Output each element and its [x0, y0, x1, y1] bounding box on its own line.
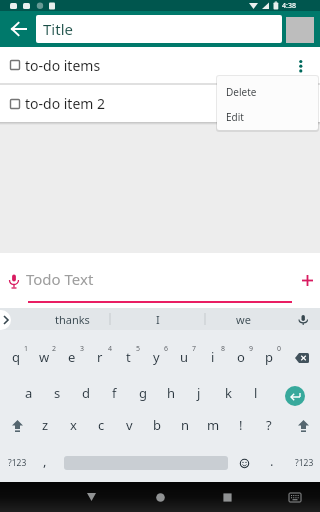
button[interactable]	[292, 53, 312, 79]
staticText: q	[12, 348, 20, 366]
staticText: z	[42, 416, 49, 434]
button[interactable]: l	[242, 383, 270, 403]
button[interactable]: v	[115, 415, 143, 435]
staticText: j	[197, 384, 201, 402]
button[interactable]: p	[255, 347, 283, 367]
staticText: 4:38	[282, 1, 296, 11]
button[interactable]: c	[87, 415, 115, 435]
button[interactable]: n	[171, 415, 199, 435]
staticText: t	[126, 348, 131, 366]
button[interactable]	[295, 418, 311, 434]
button[interactable]: to-do items	[0, 47, 320, 83]
button[interactable]: x	[59, 415, 87, 435]
staticText: s	[54, 384, 61, 402]
button[interactable]: h	[157, 383, 185, 403]
staticText: 6	[164, 344, 169, 354]
button[interactable]: t	[114, 347, 142, 367]
button[interactable]: i	[199, 347, 227, 367]
button[interactable]	[234, 453, 254, 473]
staticText: w	[39, 348, 50, 366]
button[interactable]: w	[30, 347, 58, 367]
staticText: 0	[277, 344, 282, 354]
button[interactable]	[285, 386, 305, 406]
button[interactable]	[5, 271, 23, 291]
staticText: 4	[108, 344, 113, 354]
button[interactable]: .	[258, 451, 286, 471]
button[interactable]	[77, 484, 105, 510]
button[interactable]: y	[142, 347, 170, 367]
button[interactable]: f	[100, 383, 128, 403]
button[interactable]: we	[225, 308, 261, 330]
button[interactable]: r	[86, 347, 114, 367]
button[interactable]: Title	[36, 15, 282, 43]
button[interactable]: e	[58, 347, 86, 367]
button[interactable]: !	[227, 415, 255, 435]
staticText: 2	[52, 344, 57, 354]
button[interactable]: j	[185, 383, 213, 403]
staticText: d	[82, 384, 90, 402]
button[interactable]	[283, 486, 307, 508]
staticText: .	[270, 452, 274, 470]
staticText: r	[97, 348, 103, 366]
staticText: thanks	[55, 312, 90, 327]
staticText: l	[254, 384, 258, 402]
button[interactable]: g	[129, 383, 157, 403]
staticText: b	[153, 416, 161, 434]
staticText: Delete	[226, 85, 257, 99]
staticText: f	[112, 384, 117, 402]
staticText: 8	[221, 344, 226, 354]
button[interactable]: q	[2, 347, 30, 367]
staticText: g	[139, 384, 147, 402]
button[interactable]: ?	[255, 415, 283, 435]
staticText: 1	[24, 344, 29, 354]
button[interactable]: Edit	[217, 104, 318, 130]
staticText: Todo Text	[26, 269, 94, 289]
staticText: Edit	[226, 110, 244, 124]
staticText: Title	[43, 19, 73, 39]
staticText: i	[211, 348, 215, 366]
staticText: ?123	[8, 457, 27, 469]
button[interactable]	[289, 348, 315, 368]
button[interactable]	[5, 15, 33, 43]
staticText: a	[25, 384, 33, 402]
button[interactable]: thanks	[40, 308, 104, 330]
button[interactable]: Delete	[217, 79, 318, 105]
staticText: 9	[249, 344, 254, 354]
staticText: 7	[192, 344, 197, 354]
button[interactable]: o	[227, 347, 255, 367]
staticText: h	[167, 384, 176, 402]
button[interactable]	[146, 484, 174, 510]
button[interactable]: I	[140, 308, 176, 330]
button[interactable]: k	[214, 383, 242, 403]
staticText: ,	[43, 452, 47, 470]
button[interactable]: z	[31, 415, 59, 435]
staticText: e	[68, 348, 76, 366]
staticText: p	[265, 348, 273, 366]
button[interactable]: ?123	[3, 455, 31, 471]
button[interactable]: a	[15, 383, 43, 403]
staticText: k	[225, 384, 232, 402]
button[interactable]	[213, 484, 241, 510]
staticText: to-do items	[25, 56, 101, 75]
button[interactable]: u	[170, 347, 198, 367]
staticText: y	[153, 348, 160, 366]
button[interactable]: d	[72, 383, 100, 403]
staticText: !	[239, 416, 243, 434]
button[interactable]	[9, 418, 25, 434]
button[interactable]: b	[143, 415, 171, 435]
button[interactable]: ,	[31, 451, 59, 471]
staticText: v	[126, 416, 133, 434]
button[interactable]: s	[43, 383, 71, 403]
button[interactable]: m	[199, 415, 227, 435]
staticText: ?123	[295, 457, 314, 469]
button[interactable]: to-do item 2	[0, 85, 320, 122]
button[interactable]: ?123	[290, 455, 318, 471]
staticText: I	[156, 312, 160, 327]
staticText: ?	[266, 416, 272, 434]
button[interactable]	[296, 269, 318, 291]
staticText: m	[207, 416, 220, 434]
staticText: to-do item 2	[25, 94, 106, 113]
staticText: c	[98, 416, 105, 434]
